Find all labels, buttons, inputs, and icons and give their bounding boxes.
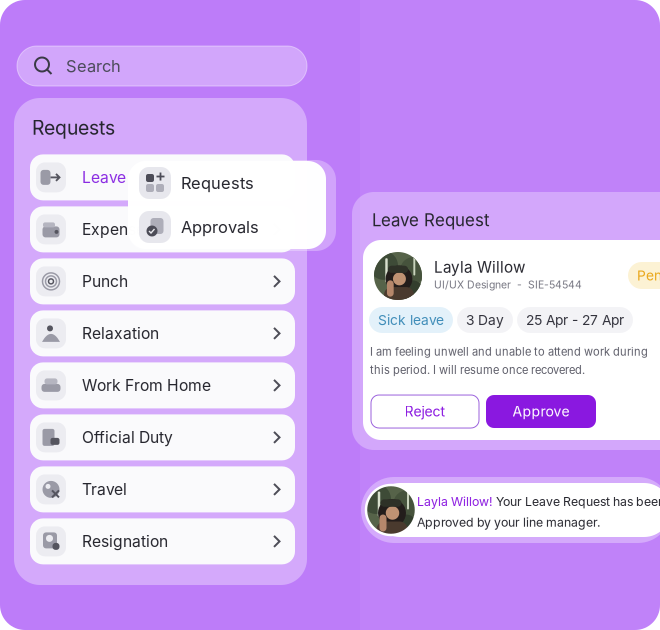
staticText: Reject xyxy=(404,403,445,420)
staticText: Layla Willow! xyxy=(417,494,493,509)
staticText: Relaxation xyxy=(82,324,159,343)
staticText: Travel xyxy=(82,480,127,499)
staticText: Approve xyxy=(512,403,569,420)
button[interactable]: Resignation xyxy=(30,518,295,564)
button[interactable]: Reject xyxy=(371,395,479,428)
staticText: Leave xyxy=(82,168,126,187)
staticText: Leave Request xyxy=(372,210,489,230)
staticText: Layla Willow xyxy=(434,258,525,276)
button[interactable]: Punch xyxy=(30,258,295,304)
button[interactable]: Work From Home xyxy=(30,362,295,408)
button[interactable]: Approve xyxy=(486,395,596,428)
staticText: Your Leave Request has been xyxy=(493,494,660,509)
staticText: Official Duty xyxy=(82,428,173,447)
staticText: 25 Apr - 27 Apr xyxy=(526,312,624,328)
staticText: 3 Day xyxy=(466,312,504,328)
staticText: Approved by your line manager. xyxy=(417,515,601,530)
button[interactable]: Requests xyxy=(128,161,326,205)
staticText: this period. I will resume once recovere… xyxy=(370,363,585,377)
staticText: Work From Home xyxy=(82,376,211,395)
staticText: UI/UX Designer - SIE-54544 xyxy=(434,278,582,291)
button[interactable]: Expense xyxy=(30,206,295,252)
staticText: Approvals xyxy=(181,217,259,237)
button[interactable]: Search xyxy=(17,46,307,86)
staticText: Resignation xyxy=(82,532,168,551)
staticText: Sick leave xyxy=(378,312,444,328)
staticText: I am feeling unwell and unable to attend… xyxy=(370,345,648,358)
button[interactable]: Relaxation xyxy=(30,310,295,356)
button[interactable]: Leave xyxy=(30,154,295,200)
staticText: Expense xyxy=(82,220,145,239)
staticText: Requests xyxy=(32,116,115,139)
button[interactable]: Approvals xyxy=(128,205,326,249)
staticText: Pending xyxy=(637,267,660,284)
staticText: Punch xyxy=(82,272,128,291)
button[interactable]: Travel xyxy=(30,466,295,512)
staticText: Search xyxy=(66,56,121,76)
staticText: Requests xyxy=(181,173,254,193)
button[interactable]: Official Duty xyxy=(30,414,295,460)
